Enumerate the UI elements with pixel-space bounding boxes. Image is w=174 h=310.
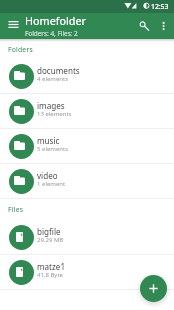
button[interactable]: bigfile: [0, 220, 174, 255]
button[interactable]: matze1: [0, 255, 174, 290]
staticText: video: [37, 170, 58, 181]
staticText: Homefolder: [25, 13, 86, 28]
staticText: Folders: [8, 45, 33, 54]
staticText: 1 element: [37, 180, 66, 188]
staticText: Files: [8, 205, 24, 214]
staticText: 41.8 Byte: [37, 271, 63, 279]
staticText: music: [37, 135, 60, 146]
staticText: Folders: 4, Files: 2: [25, 29, 78, 38]
staticText: matze1: [37, 261, 66, 272]
button[interactable]: Search: [134, 16, 154, 36]
staticText: documents: [37, 65, 80, 76]
staticText: 12:53: [151, 2, 169, 11]
staticText: 29.29 MB: [37, 236, 64, 244]
staticText: 4 elements: [37, 75, 69, 83]
button[interactable]: music: [0, 129, 174, 164]
button[interactable]: images: [0, 94, 174, 129]
button[interactable]: video: [0, 164, 174, 199]
button[interactable]: Open navigation drawer: [2, 13, 24, 35]
staticText: 5 elements: [37, 145, 69, 153]
button[interactable]: More options: [154, 18, 171, 35]
staticText: bigfile: [37, 226, 61, 237]
staticText: images: [37, 100, 65, 111]
button[interactable]: documents: [0, 59, 174, 94]
staticText: 13 elements: [37, 110, 72, 118]
button[interactable]: Add: [140, 275, 167, 302]
